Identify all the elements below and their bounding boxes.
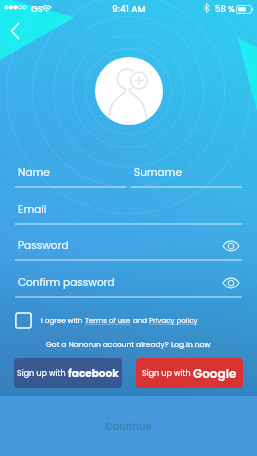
button[interactable]: Surname [131, 159, 242, 188]
button[interactable]: Continue [0, 396, 257, 456]
button[interactable]: Show password [220, 272, 242, 294]
button[interactable]: Sign up with [14, 358, 122, 388]
staticText: Got a Nanorun account already? [46, 339, 171, 349]
button[interactable]: Email [15, 196, 242, 225]
button[interactable]: Add profile photo [95, 57, 163, 125]
button[interactable]: I agree checkbox [15, 312, 32, 329]
staticText: 9:41 AM [112, 3, 146, 16]
button[interactable]: Show password [220, 235, 242, 257]
button[interactable]: Sign up with [136, 358, 243, 388]
staticText: Google [193, 365, 237, 382]
staticText: Sign up with [17, 368, 68, 379]
button[interactable]: Back [2, 17, 30, 45]
staticText: facebook [68, 366, 119, 381]
staticText: Name [18, 165, 50, 180]
staticText: Surname [134, 165, 182, 180]
staticText: Email [18, 202, 47, 217]
staticText: Confirm password [18, 275, 115, 290]
staticText: and [131, 316, 149, 326]
button[interactable]: Confirm password [15, 269, 242, 298]
button[interactable]: Password [15, 232, 242, 261]
button[interactable]: Terms of use [85, 316, 131, 326]
staticText: Sign up with [142, 368, 193, 379]
staticText: GS [31, 3, 43, 15]
button[interactable]: Name [15, 159, 126, 188]
staticText: Continue [105, 419, 152, 433]
button[interactable]: Privacy policy [149, 316, 198, 326]
staticText: 58 % [215, 3, 235, 15]
staticText: I agree with [41, 316, 85, 326]
staticText: Password [18, 238, 69, 253]
button[interactable]: Log in now [171, 339, 211, 349]
